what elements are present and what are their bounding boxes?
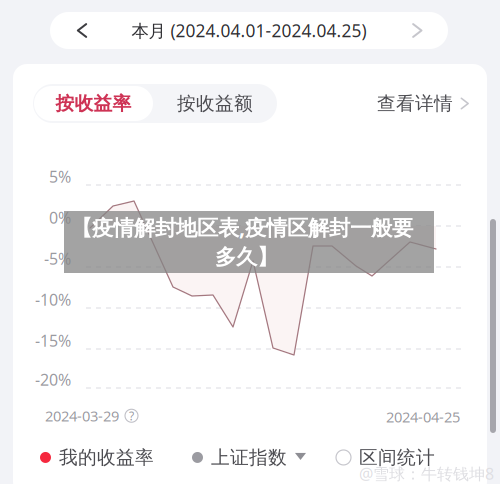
staticText: -5% [44, 248, 71, 269]
staticText: 0% [49, 207, 71, 228]
staticText: 按收益额 [177, 92, 253, 115]
staticText: 本月 (2024.04.01-2024.04.25) [131, 19, 366, 42]
button[interactable]: 按收益额 [154, 86, 276, 121]
staticText: 按收益率 [55, 92, 131, 115]
staticText: 5% [49, 166, 71, 187]
staticText: ? [129, 408, 134, 424]
staticText: 2024-04-25 [386, 407, 460, 426]
staticText: 查看详情 [377, 92, 453, 115]
staticText: -20% [35, 369, 71, 390]
staticText: 区间统计 [359, 446, 435, 469]
button[interactable]: Next month [395, 12, 439, 49]
staticText: 2024-03-29 [45, 406, 119, 425]
staticText: 上证指数 [211, 446, 287, 469]
button[interactable]: Previous month [60, 12, 104, 49]
button[interactable]: 查看详情 [377, 92, 471, 115]
staticText: 【疫情解封地区表,疫情区解封一般要 [71, 213, 413, 241]
staticText: -15% [35, 330, 71, 351]
staticText: 我的收益率 [59, 446, 154, 469]
staticText: 多久】 [215, 244, 278, 270]
staticText: @雪球：牛转钱坤8 [359, 463, 494, 484]
staticText: -10% [35, 289, 71, 310]
button[interactable]: 按收益率 [34, 86, 153, 121]
